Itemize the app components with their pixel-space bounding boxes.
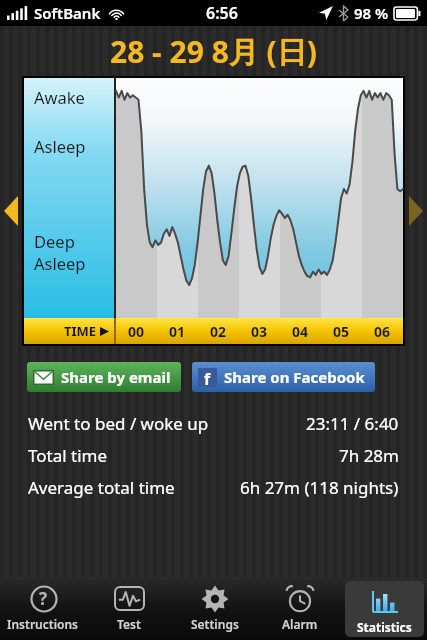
- staticText: 03: [251, 322, 268, 341]
- staticText: Alarm: [282, 616, 318, 632]
- staticText: f: [204, 368, 211, 387]
- staticText: 7h 28m: [339, 444, 399, 467]
- staticText: Deep: [34, 230, 75, 252]
- staticText: Asleep: [34, 135, 86, 157]
- staticText: TIME: [64, 322, 97, 340]
- staticText: Share by email: [61, 367, 171, 387]
- staticText: Share on Facebook: [224, 367, 365, 387]
- staticText: 05: [333, 322, 350, 341]
- staticText: 02: [210, 322, 227, 341]
- staticText: Awake: [34, 86, 85, 108]
- button[interactable]: ?: [0, 578, 86, 640]
- staticText: ?: [39, 587, 48, 610]
- staticText: 23:11 / 6:40: [306, 412, 399, 435]
- button[interactable]: f: [192, 362, 375, 392]
- staticText: Instructions: [7, 616, 79, 632]
- button[interactable]: Next night: [405, 76, 427, 346]
- staticText: 6:56: [206, 2, 238, 24]
- staticText: Statistics: [357, 619, 412, 635]
- staticText: 04: [292, 322, 309, 341]
- staticText: Test: [117, 616, 141, 632]
- staticText: 98 %: [354, 3, 389, 23]
- staticText: 00: [128, 322, 145, 341]
- button[interactable]: Test: [86, 578, 172, 640]
- button[interactable]: Settings: [172, 578, 257, 640]
- staticText: 6h 27m (118 nights): [240, 476, 399, 499]
- staticText: Total time: [28, 444, 108, 467]
- staticText: SoftBank: [34, 3, 101, 23]
- staticText: Went to bed / woke up: [28, 412, 209, 435]
- staticText: 01: [169, 322, 186, 341]
- button[interactable]: Previous night: [0, 76, 22, 346]
- staticText: 28 - 29 8月 (日): [110, 31, 317, 72]
- staticText: Asleep: [34, 252, 86, 274]
- staticText: Settings: [191, 616, 239, 632]
- button[interactable]: Share by email: [27, 362, 181, 392]
- button[interactable]: Statistics: [345, 581, 424, 637]
- button[interactable]: Alarm: [257, 578, 342, 640]
- staticText: 06: [374, 322, 391, 341]
- staticText: Average total time: [28, 476, 175, 499]
